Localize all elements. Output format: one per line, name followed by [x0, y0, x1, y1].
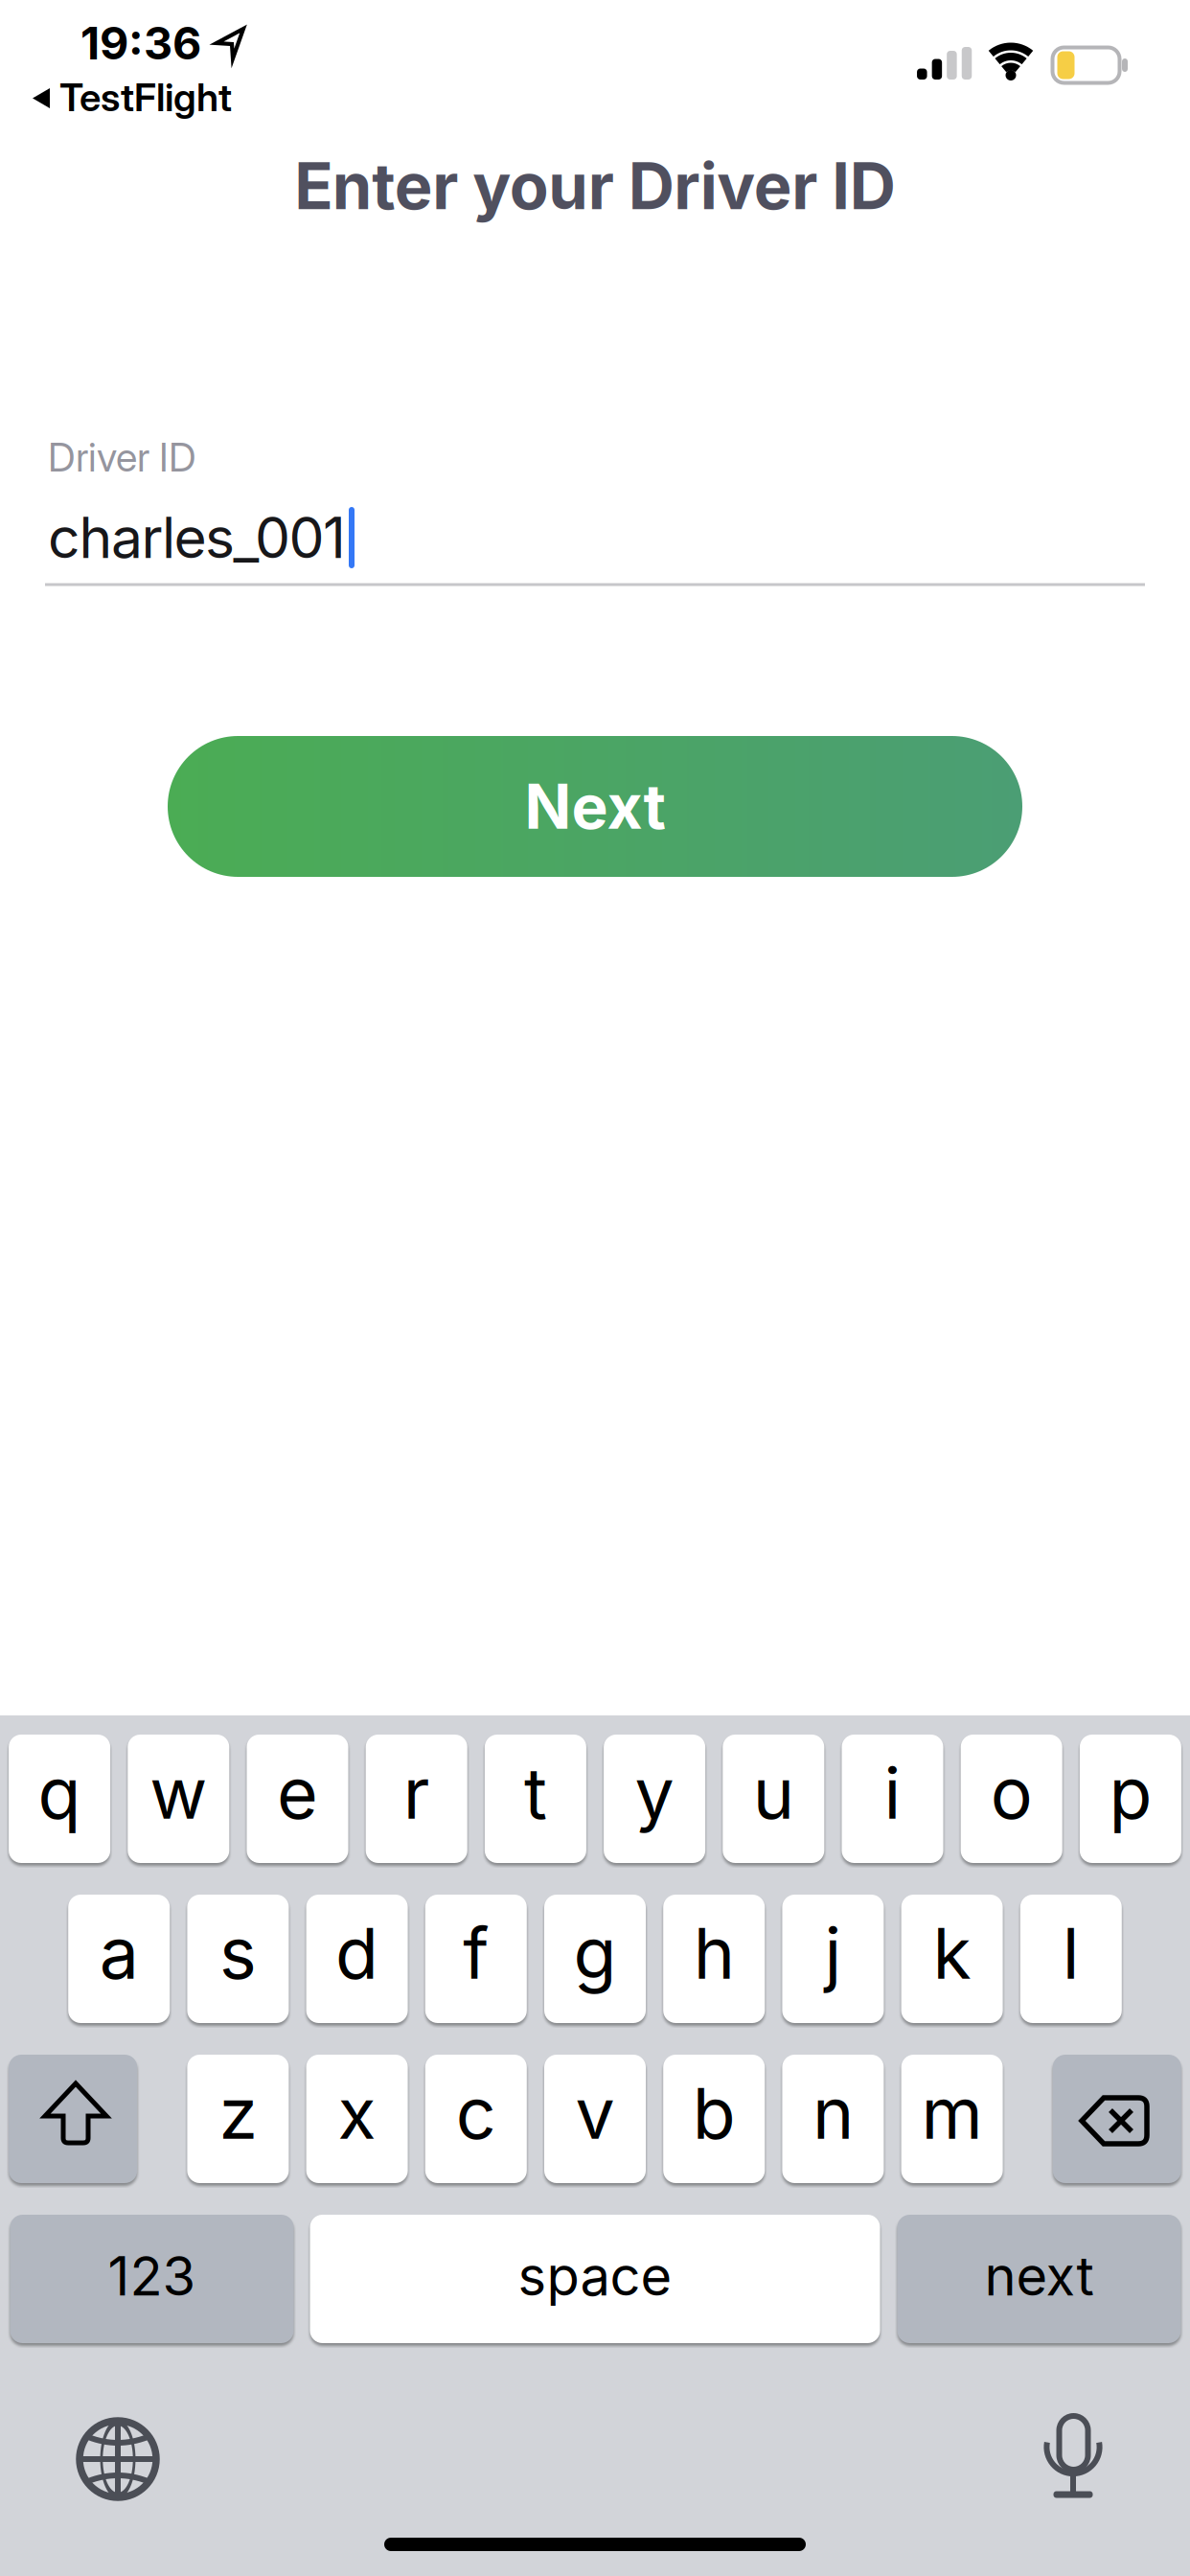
staticText: d — [335, 1912, 379, 1994]
staticText: g — [573, 1912, 617, 1994]
staticText: s — [219, 1912, 257, 1994]
staticText: b — [692, 2072, 736, 2155]
staticText: t — [524, 1752, 547, 1834]
staticText: e — [277, 1752, 318, 1834]
staticText: i — [884, 1752, 901, 1834]
staticText: w — [150, 1752, 207, 1834]
staticText: q — [38, 1752, 81, 1834]
staticText: 19:36 — [80, 17, 201, 70]
staticText: TestFlight — [59, 75, 232, 120]
staticText: charles_001 — [48, 504, 346, 571]
staticText: a — [99, 1912, 139, 1994]
staticText: next — [984, 2244, 1094, 2308]
staticText: l — [1062, 1912, 1080, 1994]
staticText: r — [403, 1752, 430, 1834]
staticText: f — [463, 1912, 489, 1994]
staticText: n — [812, 2072, 854, 2155]
staticText: p — [1109, 1752, 1152, 1834]
staticText: m — [921, 2072, 983, 2155]
staticText: v — [575, 2072, 615, 2155]
staticText: y — [635, 1752, 674, 1834]
staticText: c — [456, 2072, 496, 2155]
staticText: Enter your Driver ID — [294, 148, 896, 224]
staticText: z — [219, 2072, 257, 2155]
staticText: Driver ID — [48, 434, 196, 481]
staticText: Next — [525, 770, 665, 843]
staticText: u — [753, 1752, 794, 1834]
staticText: o — [990, 1752, 1033, 1834]
staticText: x — [338, 2072, 376, 2155]
staticText: j — [824, 1912, 842, 1994]
staticText: 123 — [108, 2244, 196, 2308]
staticText: k — [933, 1912, 971, 1994]
staticText: h — [693, 1912, 735, 1994]
staticText: space — [518, 2244, 672, 2308]
